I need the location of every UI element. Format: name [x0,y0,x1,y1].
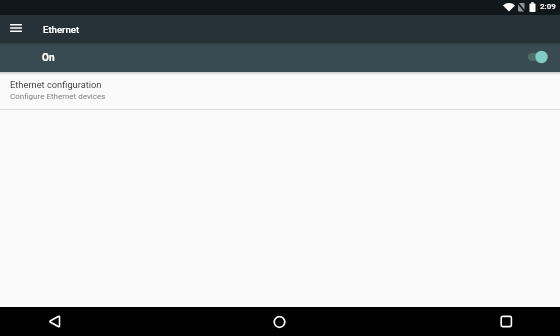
button[interactable] [263,307,296,336]
button[interactable]: Ethernet configuration [0,72,560,109]
staticText: 2:09 [540,2,556,11]
button[interactable] [38,307,71,336]
button[interactable] [4,14,28,42]
button[interactable] [490,307,523,336]
staticText: On [42,52,55,64]
staticText: Configure Ethernet devices [10,92,106,101]
staticText: Ethernet [43,24,80,35]
button[interactable] [528,50,548,66]
staticText: Ethernet configuration [10,79,102,90]
